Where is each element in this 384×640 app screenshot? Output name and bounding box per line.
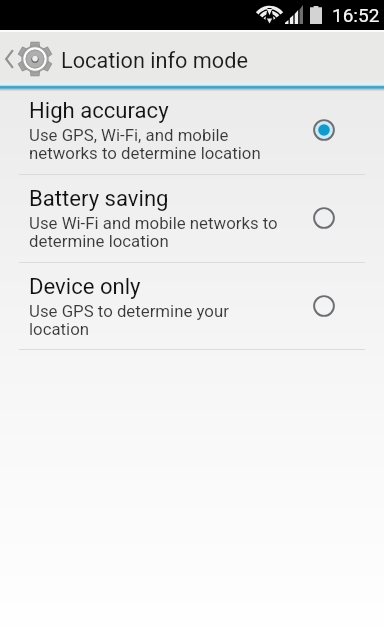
staticText: 16:52 (332, 4, 380, 26)
staticText: Device only (29, 273, 141, 299)
staticText: Location info mode (61, 48, 248, 73)
other: Battery saving (302, 196, 346, 240)
other: High accuracy (302, 108, 346, 152)
staticText: Battery saving (29, 185, 169, 211)
button[interactable]: Battery saving (0, 175, 384, 262)
button[interactable]: Navigate up (0, 32, 57, 86)
other: Device only (302, 284, 346, 328)
staticText: Use Wi-Fi and mobile networks to determi… (29, 213, 299, 251)
button[interactable]: High accuracy (0, 87, 384, 174)
staticText: Use GPS to determine your location (29, 301, 299, 339)
staticText: High accuracy (29, 97, 169, 123)
button[interactable]: Device only (0, 263, 384, 349)
staticText: Use GPS, Wi-Fi, and mobile networks to d… (29, 125, 299, 163)
